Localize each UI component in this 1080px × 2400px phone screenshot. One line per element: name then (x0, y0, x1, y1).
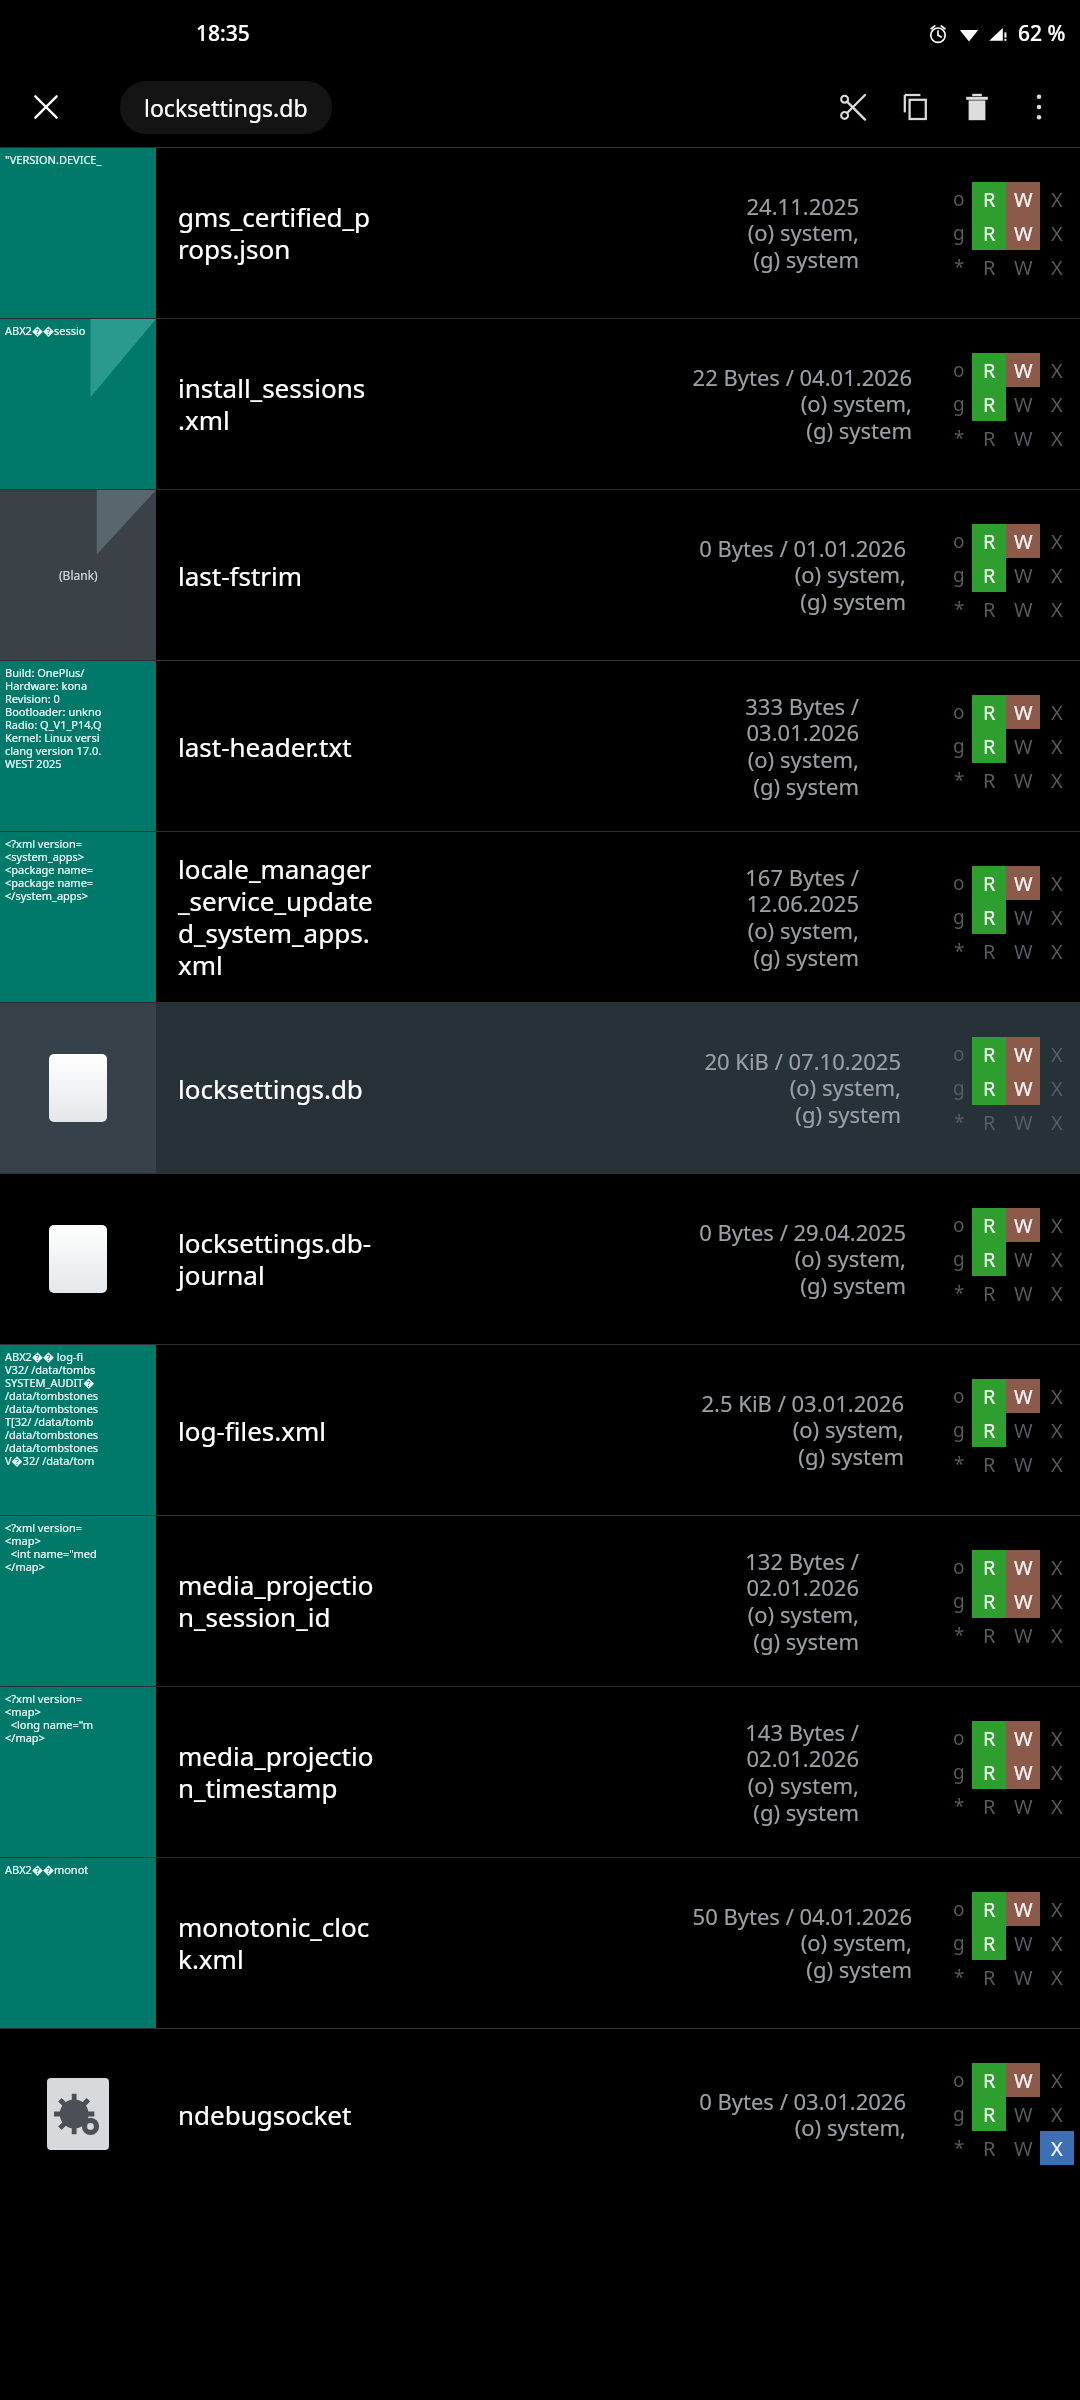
button[interactable]: R (972, 524, 1006, 558)
button[interactable]: R (972, 2131, 1006, 2165)
button[interactable]: X (1040, 1960, 1074, 1994)
button[interactable]: R (972, 1926, 1006, 1960)
button[interactable]: X (1040, 1618, 1074, 1652)
button[interactable]: W (1006, 1755, 1040, 1789)
button[interactable]: W (1006, 1618, 1040, 1652)
button[interactable]: W (1006, 524, 1040, 558)
button[interactable]: W (1006, 1550, 1040, 1584)
button[interactable]: W (1006, 1892, 1040, 1926)
button[interactable]: ABX2�� log-fi V32/ /data/tombs SYSTEM_AU… (0, 1345, 1080, 1515)
button[interactable]: X (1040, 1892, 1074, 1926)
button[interactable]: W (1006, 695, 1040, 729)
button[interactable]: W (1006, 1721, 1040, 1755)
button[interactable]: R (972, 1584, 1006, 1618)
button[interactable]: R (972, 1618, 1006, 1652)
button[interactable]: X (1040, 1379, 1074, 1413)
button[interactable]: R (972, 729, 1006, 763)
button[interactable]: R (972, 1242, 1006, 1276)
button[interactable]: X (1040, 2063, 1074, 2097)
button[interactable]: W (1006, 592, 1040, 626)
button[interactable]: R (972, 1105, 1006, 1139)
button[interactable]: R (972, 1379, 1006, 1413)
button[interactable]: ndebugsocket (0, 2029, 1080, 2199)
button[interactable]: <?xml version= <map> <long name="m </map… (0, 1687, 1080, 1857)
button[interactable]: W (1006, 2063, 1040, 2097)
button[interactable]: W (1006, 934, 1040, 968)
button[interactable]: locksettings.db (120, 81, 332, 134)
button[interactable]: R (972, 387, 1006, 421)
button[interactable]: "VERSION.DEVICE_ (0, 148, 1080, 318)
button[interactable]: W (1006, 353, 1040, 387)
button[interactable]: X (1040, 182, 1074, 216)
button[interactable]: X (1040, 353, 1074, 387)
button[interactable]: W (1006, 387, 1040, 421)
button[interactable]: X (1040, 1413, 1074, 1447)
button[interactable]: R (972, 1789, 1006, 1823)
button[interactable]: R (972, 1721, 1006, 1755)
button[interactable]: W (1006, 1242, 1040, 1276)
button[interactable]: Delete (946, 76, 1008, 138)
button[interactable]: W (1006, 1379, 1040, 1413)
button[interactable]: W (1006, 1584, 1040, 1618)
button[interactable]: W (1006, 182, 1040, 216)
button[interactable]: Cut (822, 76, 884, 138)
button[interactable]: X (1040, 1071, 1074, 1105)
button[interactable]: X (1040, 1447, 1074, 1481)
button[interactable]: Copy (884, 76, 946, 138)
button[interactable]: R (972, 182, 1006, 216)
button[interactable]: W (1006, 1447, 1040, 1481)
button[interactable]: X (1040, 1037, 1074, 1071)
button[interactable]: ABX2��sessio (0, 319, 1080, 489)
button[interactable]: W (1006, 1037, 1040, 1071)
button[interactable]: X (1040, 934, 1074, 968)
button[interactable]: W (1006, 250, 1040, 284)
button[interactable]: (Blank) (0, 490, 1080, 660)
button[interactable]: R (972, 1550, 1006, 1584)
button[interactable]: R (972, 421, 1006, 455)
button[interactable]: X (1040, 1755, 1074, 1789)
button[interactable]: R (972, 866, 1006, 900)
button[interactable]: R (972, 2063, 1006, 2097)
button[interactable]: R (972, 250, 1006, 284)
button[interactable]: X (1040, 763, 1074, 797)
button[interactable]: X (1040, 216, 1074, 250)
button[interactable]: R (972, 1892, 1006, 1926)
button[interactable]: X (1040, 2131, 1074, 2165)
button[interactable]: X (1040, 1242, 1074, 1276)
button[interactable]: R (972, 1276, 1006, 1310)
button[interactable]: W (1006, 1789, 1040, 1823)
button[interactable]: locksettings.db (0, 1003, 1080, 1173)
button[interactable]: W (1006, 729, 1040, 763)
button[interactable]: W (1006, 421, 1040, 455)
button[interactable]: W (1006, 1926, 1040, 1960)
button[interactable]: X (1040, 592, 1074, 626)
button[interactable]: W (1006, 1413, 1040, 1447)
button[interactable]: <?xml version= <map> <int name="med </ma… (0, 1516, 1080, 1686)
button[interactable]: R (972, 2097, 1006, 2131)
button[interactable]: R (972, 1447, 1006, 1481)
button[interactable]: R (972, 592, 1006, 626)
button[interactable]: X (1040, 2097, 1074, 2131)
button[interactable]: R (972, 1071, 1006, 1105)
button[interactable]: W (1006, 558, 1040, 592)
button[interactable]: W (1006, 1071, 1040, 1105)
button[interactable]: W (1006, 1105, 1040, 1139)
button[interactable]: X (1040, 1550, 1074, 1584)
button[interactable]: R (972, 1037, 1006, 1071)
button[interactable]: X (1040, 1105, 1074, 1139)
button[interactable]: X (1040, 1208, 1074, 1242)
button[interactable]: Build: OnePlus/ Hardware: kona Revision:… (0, 661, 1080, 831)
button[interactable]: W (1006, 900, 1040, 934)
button[interactable]: X (1040, 695, 1074, 729)
button[interactable]: X (1040, 1789, 1074, 1823)
button[interactable]: R (972, 900, 1006, 934)
button[interactable]: R (972, 353, 1006, 387)
button[interactable]: R (972, 558, 1006, 592)
button[interactable]: X (1040, 729, 1074, 763)
button[interactable]: R (972, 695, 1006, 729)
button[interactable]: X (1040, 1926, 1074, 1960)
button[interactable]: R (972, 1208, 1006, 1242)
button[interactable]: More options (1008, 76, 1070, 138)
button[interactable]: W (1006, 216, 1040, 250)
button[interactable]: X (1040, 900, 1074, 934)
